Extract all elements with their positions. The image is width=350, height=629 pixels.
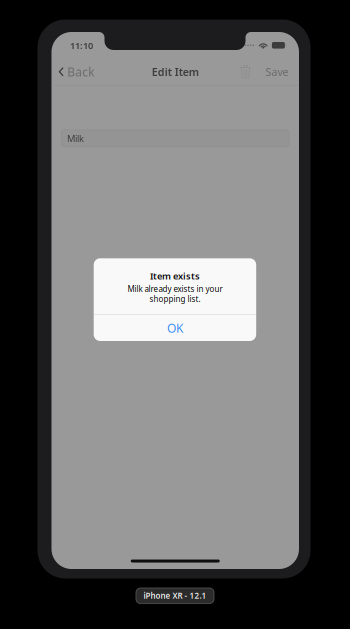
staticText: Back bbox=[67, 64, 94, 80]
staticText: Save bbox=[265, 65, 288, 79]
staticText: Item exists bbox=[150, 270, 200, 282]
staticText: OK bbox=[167, 320, 183, 336]
button[interactable]: Save bbox=[262, 59, 288, 85]
staticText: Edit Item bbox=[152, 65, 199, 79]
button[interactable]: Back bbox=[51, 58, 98, 86]
staticText: shopping list. bbox=[149, 294, 200, 304]
staticText: Milk already exists in your bbox=[127, 284, 222, 294]
staticText: iPhone XR - 12.1 bbox=[143, 590, 206, 601]
button[interactable]: OK bbox=[94, 315, 256, 341]
button[interactable]: Delete bbox=[236, 61, 254, 83]
staticText: 11:10 bbox=[70, 39, 93, 51]
staticText: Milk bbox=[67, 132, 84, 145]
